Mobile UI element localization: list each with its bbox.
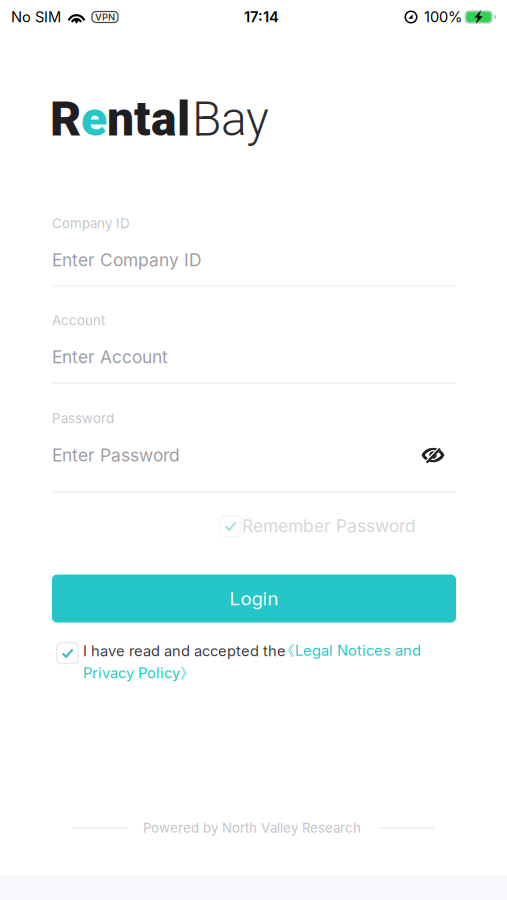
- button[interactable]: Accept terms and privacy policy: [57, 643, 78, 664]
- staticText: Enter Company ID: [52, 249, 202, 270]
- staticText: Enter Password: [52, 445, 180, 466]
- button[interactable]: Show password: [422, 446, 456, 464]
- staticText: Powered by North Valley Research: [143, 820, 361, 836]
- button[interactable]: Privacy Policy》: [83, 664, 195, 683]
- staticText: Privacy Policy》: [83, 664, 195, 683]
- button[interactable]: Login: [52, 575, 456, 623]
- button[interactable]: Remember Password: [220, 516, 416, 537]
- staticText: I have read and accepted the: [83, 642, 286, 660]
- staticText: Enter Account: [52, 346, 168, 367]
- staticText: Company ID: [52, 215, 130, 231]
- button[interactable]: 《Legal Notices and: [280, 642, 421, 660]
- staticText: e: [81, 91, 107, 147]
- staticText: Password: [52, 410, 114, 427]
- staticText: R: [50, 91, 81, 147]
- staticText: Account: [52, 312, 105, 328]
- staticText: No SIM: [11, 8, 61, 26]
- staticText: Login: [229, 587, 278, 610]
- staticText: Bay: [192, 91, 269, 147]
- staticText: VPN: [95, 11, 115, 23]
- staticText: Remember Password: [242, 516, 416, 537]
- staticText: 100%: [424, 8, 462, 26]
- staticText: 《Legal Notices and: [280, 642, 421, 660]
- staticText: 17:14: [244, 8, 279, 26]
- staticText: ntal: [107, 91, 190, 147]
